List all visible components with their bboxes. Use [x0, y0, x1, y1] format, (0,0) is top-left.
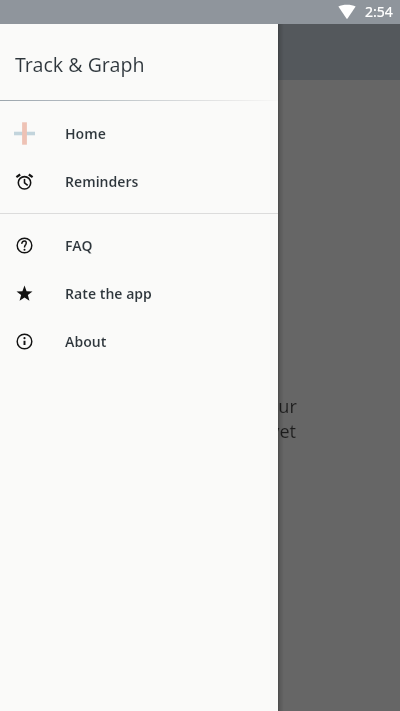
button[interactable]: Rate the app [0, 269, 278, 317]
staticText: About [65, 332, 107, 351]
staticText: Rate the app [65, 284, 152, 303]
staticText: 2:54 [365, 2, 393, 21]
staticText: Home [65, 124, 106, 143]
staticText: FAQ [65, 236, 93, 255]
staticText: Reminders [65, 172, 139, 191]
button[interactable]: About [0, 317, 278, 365]
button[interactable]: FAQ [0, 221, 278, 269]
staticText: No graphs to display for your [50, 394, 297, 419]
button[interactable]: Home [0, 109, 278, 157]
button[interactable]: Reminders [0, 157, 278, 205]
staticText: tracked data yet [160, 419, 297, 444]
staticText: Track & Graph [15, 51, 145, 78]
